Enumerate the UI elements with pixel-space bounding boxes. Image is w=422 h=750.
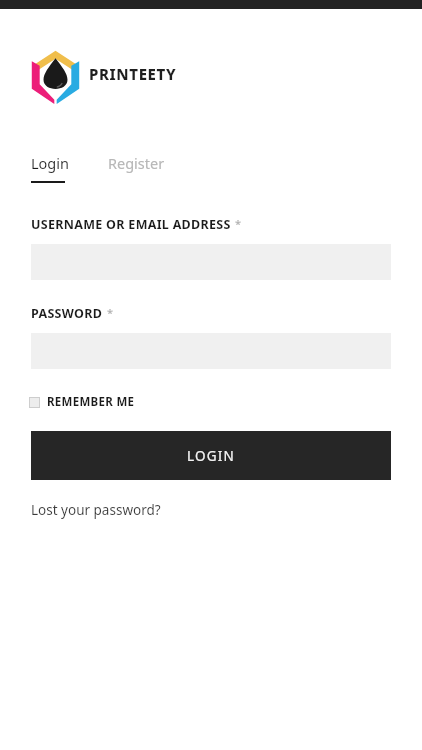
staticText: USERNAME OR EMAIL ADDRESS — [31, 216, 231, 233]
button[interactable]: LOGIN — [31, 431, 391, 480]
staticText: PASSWORD — [31, 305, 103, 322]
button[interactable]: PRINTEETY — [30, 45, 177, 105]
button[interactable]: Lost your password? — [31, 501, 161, 519]
staticText: * — [235, 216, 242, 231]
staticText: * — [107, 305, 114, 320]
button[interactable]: Login — [31, 153, 69, 183]
staticText: Register — [108, 153, 165, 173]
staticText: REMEMBER ME — [47, 394, 135, 410]
button[interactable]: REMEMBER ME — [29, 394, 135, 410]
staticText: LOGIN — [187, 447, 236, 465]
button[interactable]: Register — [108, 153, 165, 173]
staticText: PRINTEETY — [89, 64, 177, 84]
staticText: Login — [31, 153, 69, 173]
staticText: Lost your password? — [31, 501, 161, 519]
